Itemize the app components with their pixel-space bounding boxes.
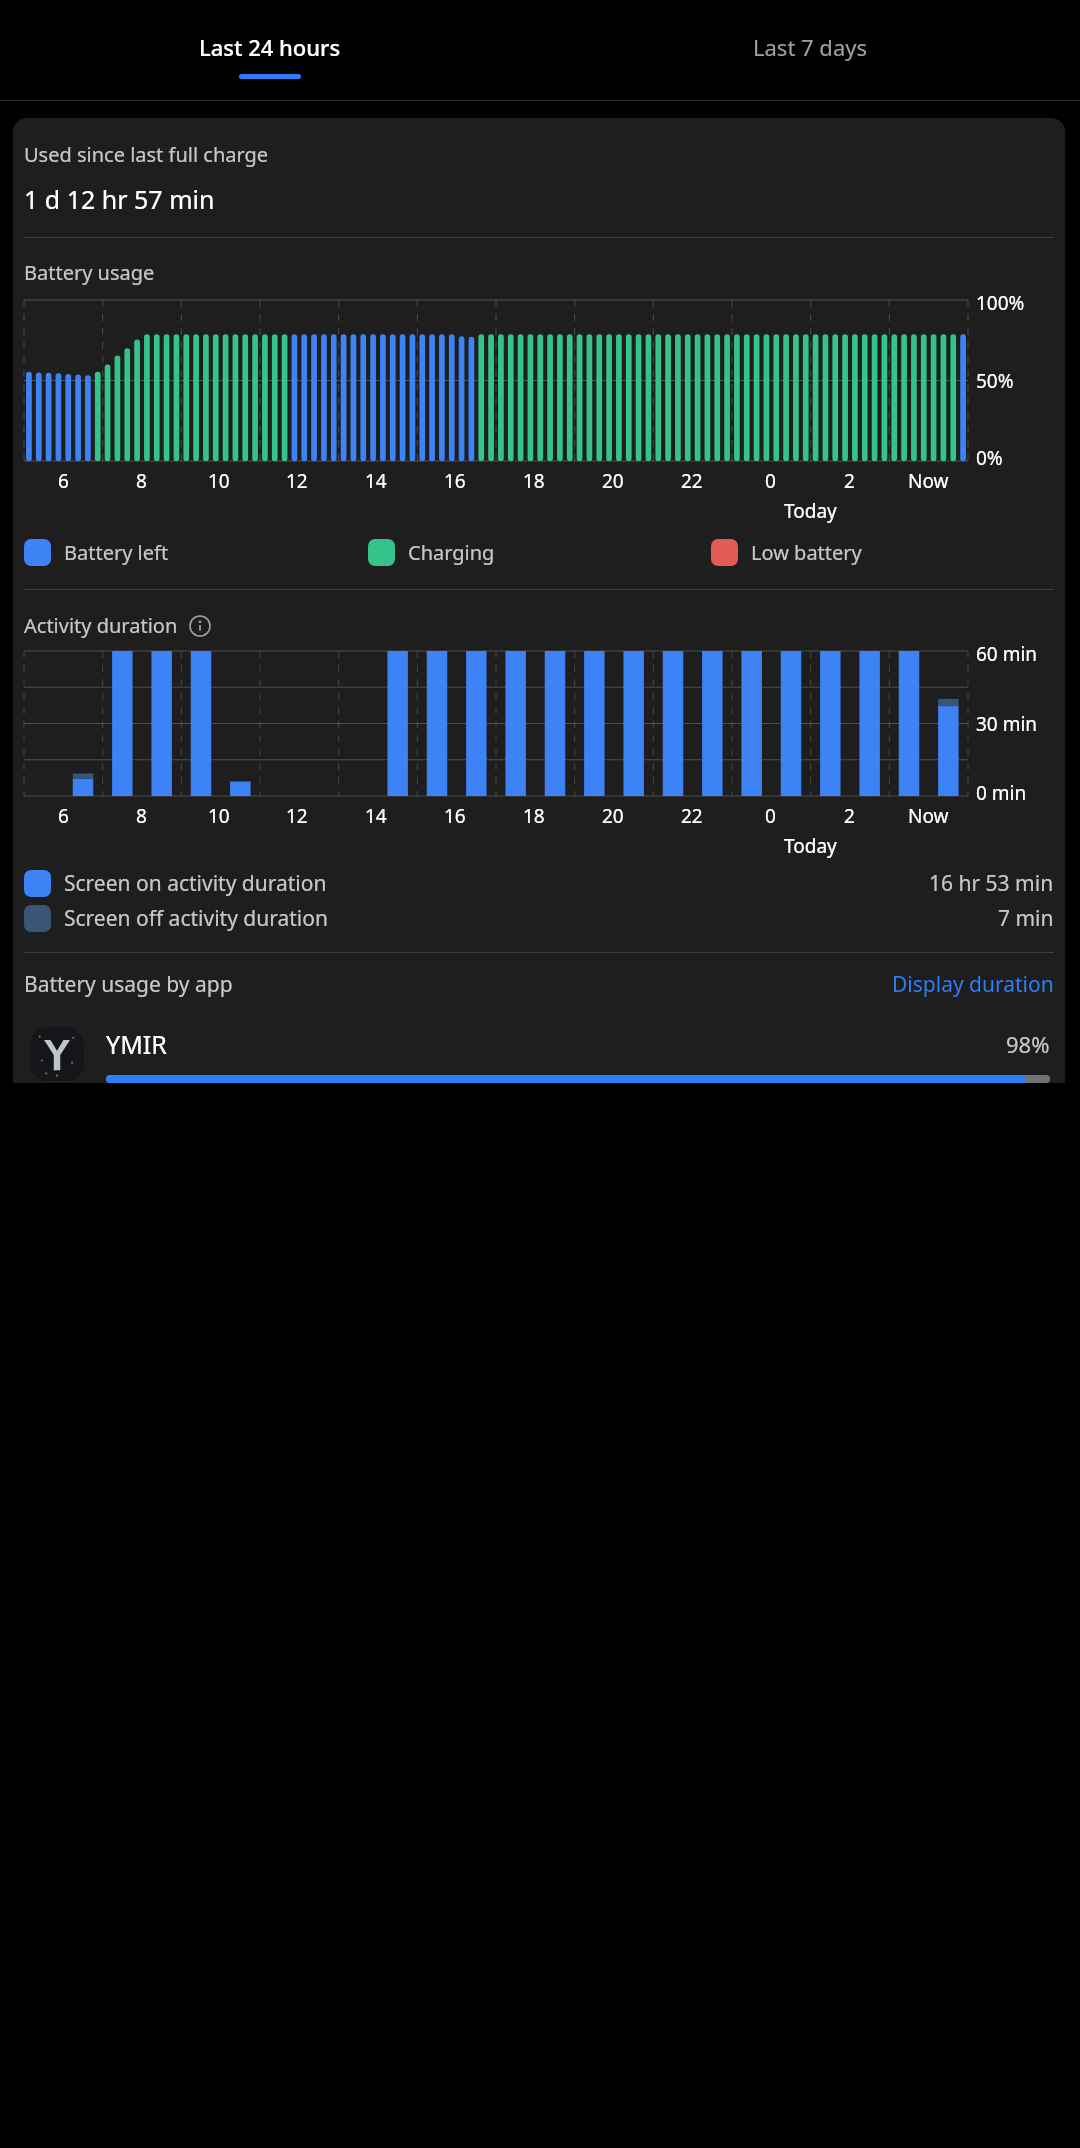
staticText: Battery left [64,539,169,566]
staticText: Battery usage by app [24,970,233,999]
staticText: 8 [136,803,147,829]
staticText: 0 [765,803,776,829]
button[interactable]: Display duration [892,970,1054,999]
staticText: 20 [602,468,624,494]
staticText: 14 [365,468,387,494]
staticText: 20 [602,803,624,829]
staticText: Charging [408,539,495,566]
staticText: Screen on activity duration [64,869,327,898]
staticText: Activity duration [24,612,178,639]
staticText: Used since last full charge [24,141,269,168]
staticText: Display duration [892,970,1054,999]
staticText: 1 d 12 hr 57 min [24,182,215,216]
staticText: 18 [523,468,545,494]
staticText: 22 [681,803,703,829]
staticText: 0 min [976,780,1027,806]
staticText: Now [908,803,949,829]
staticText: 0% [976,445,1003,471]
staticText: 10 [208,468,230,494]
staticText: 98% [1006,1029,1050,1059]
staticText: 6 [58,468,69,494]
staticText: 18 [523,803,545,829]
staticText: YMIR [106,1027,167,1061]
staticText: Low battery [751,539,862,566]
staticText: 50% [976,368,1014,394]
staticText: Today [784,833,837,859]
staticText: 6 [58,803,69,829]
staticText: 16 [444,803,466,829]
staticText: 16 hr 53 min [929,869,1054,898]
staticText: Now [908,468,949,494]
staticText: 7 min [998,904,1054,933]
staticText: 22 [681,468,703,494]
staticText: 2 [844,468,855,494]
button[interactable]: Activity duration info [188,614,212,638]
staticText: 0 [765,468,776,494]
staticText: 14 [365,803,387,829]
staticText: Last 24 hours [199,32,341,62]
button[interactable]: Last 24 hours [0,0,540,100]
staticText: 30 min [976,711,1038,737]
staticText: 100% [976,290,1025,316]
staticText: Today [784,498,837,524]
staticText: 12 [286,803,308,829]
staticText: 2 [844,803,855,829]
staticText: 8 [136,468,147,494]
staticText: 10 [208,803,230,829]
button[interactable]: Last 7 days [540,0,1080,100]
staticText: Screen off activity duration [64,904,328,933]
staticText: 12 [286,468,308,494]
staticText: Last 7 days [753,32,868,62]
staticText: Battery usage [24,259,155,286]
staticText: 60 min [976,641,1038,667]
button[interactable]: YMIR [24,1027,1054,1083]
staticText: 16 [444,468,466,494]
